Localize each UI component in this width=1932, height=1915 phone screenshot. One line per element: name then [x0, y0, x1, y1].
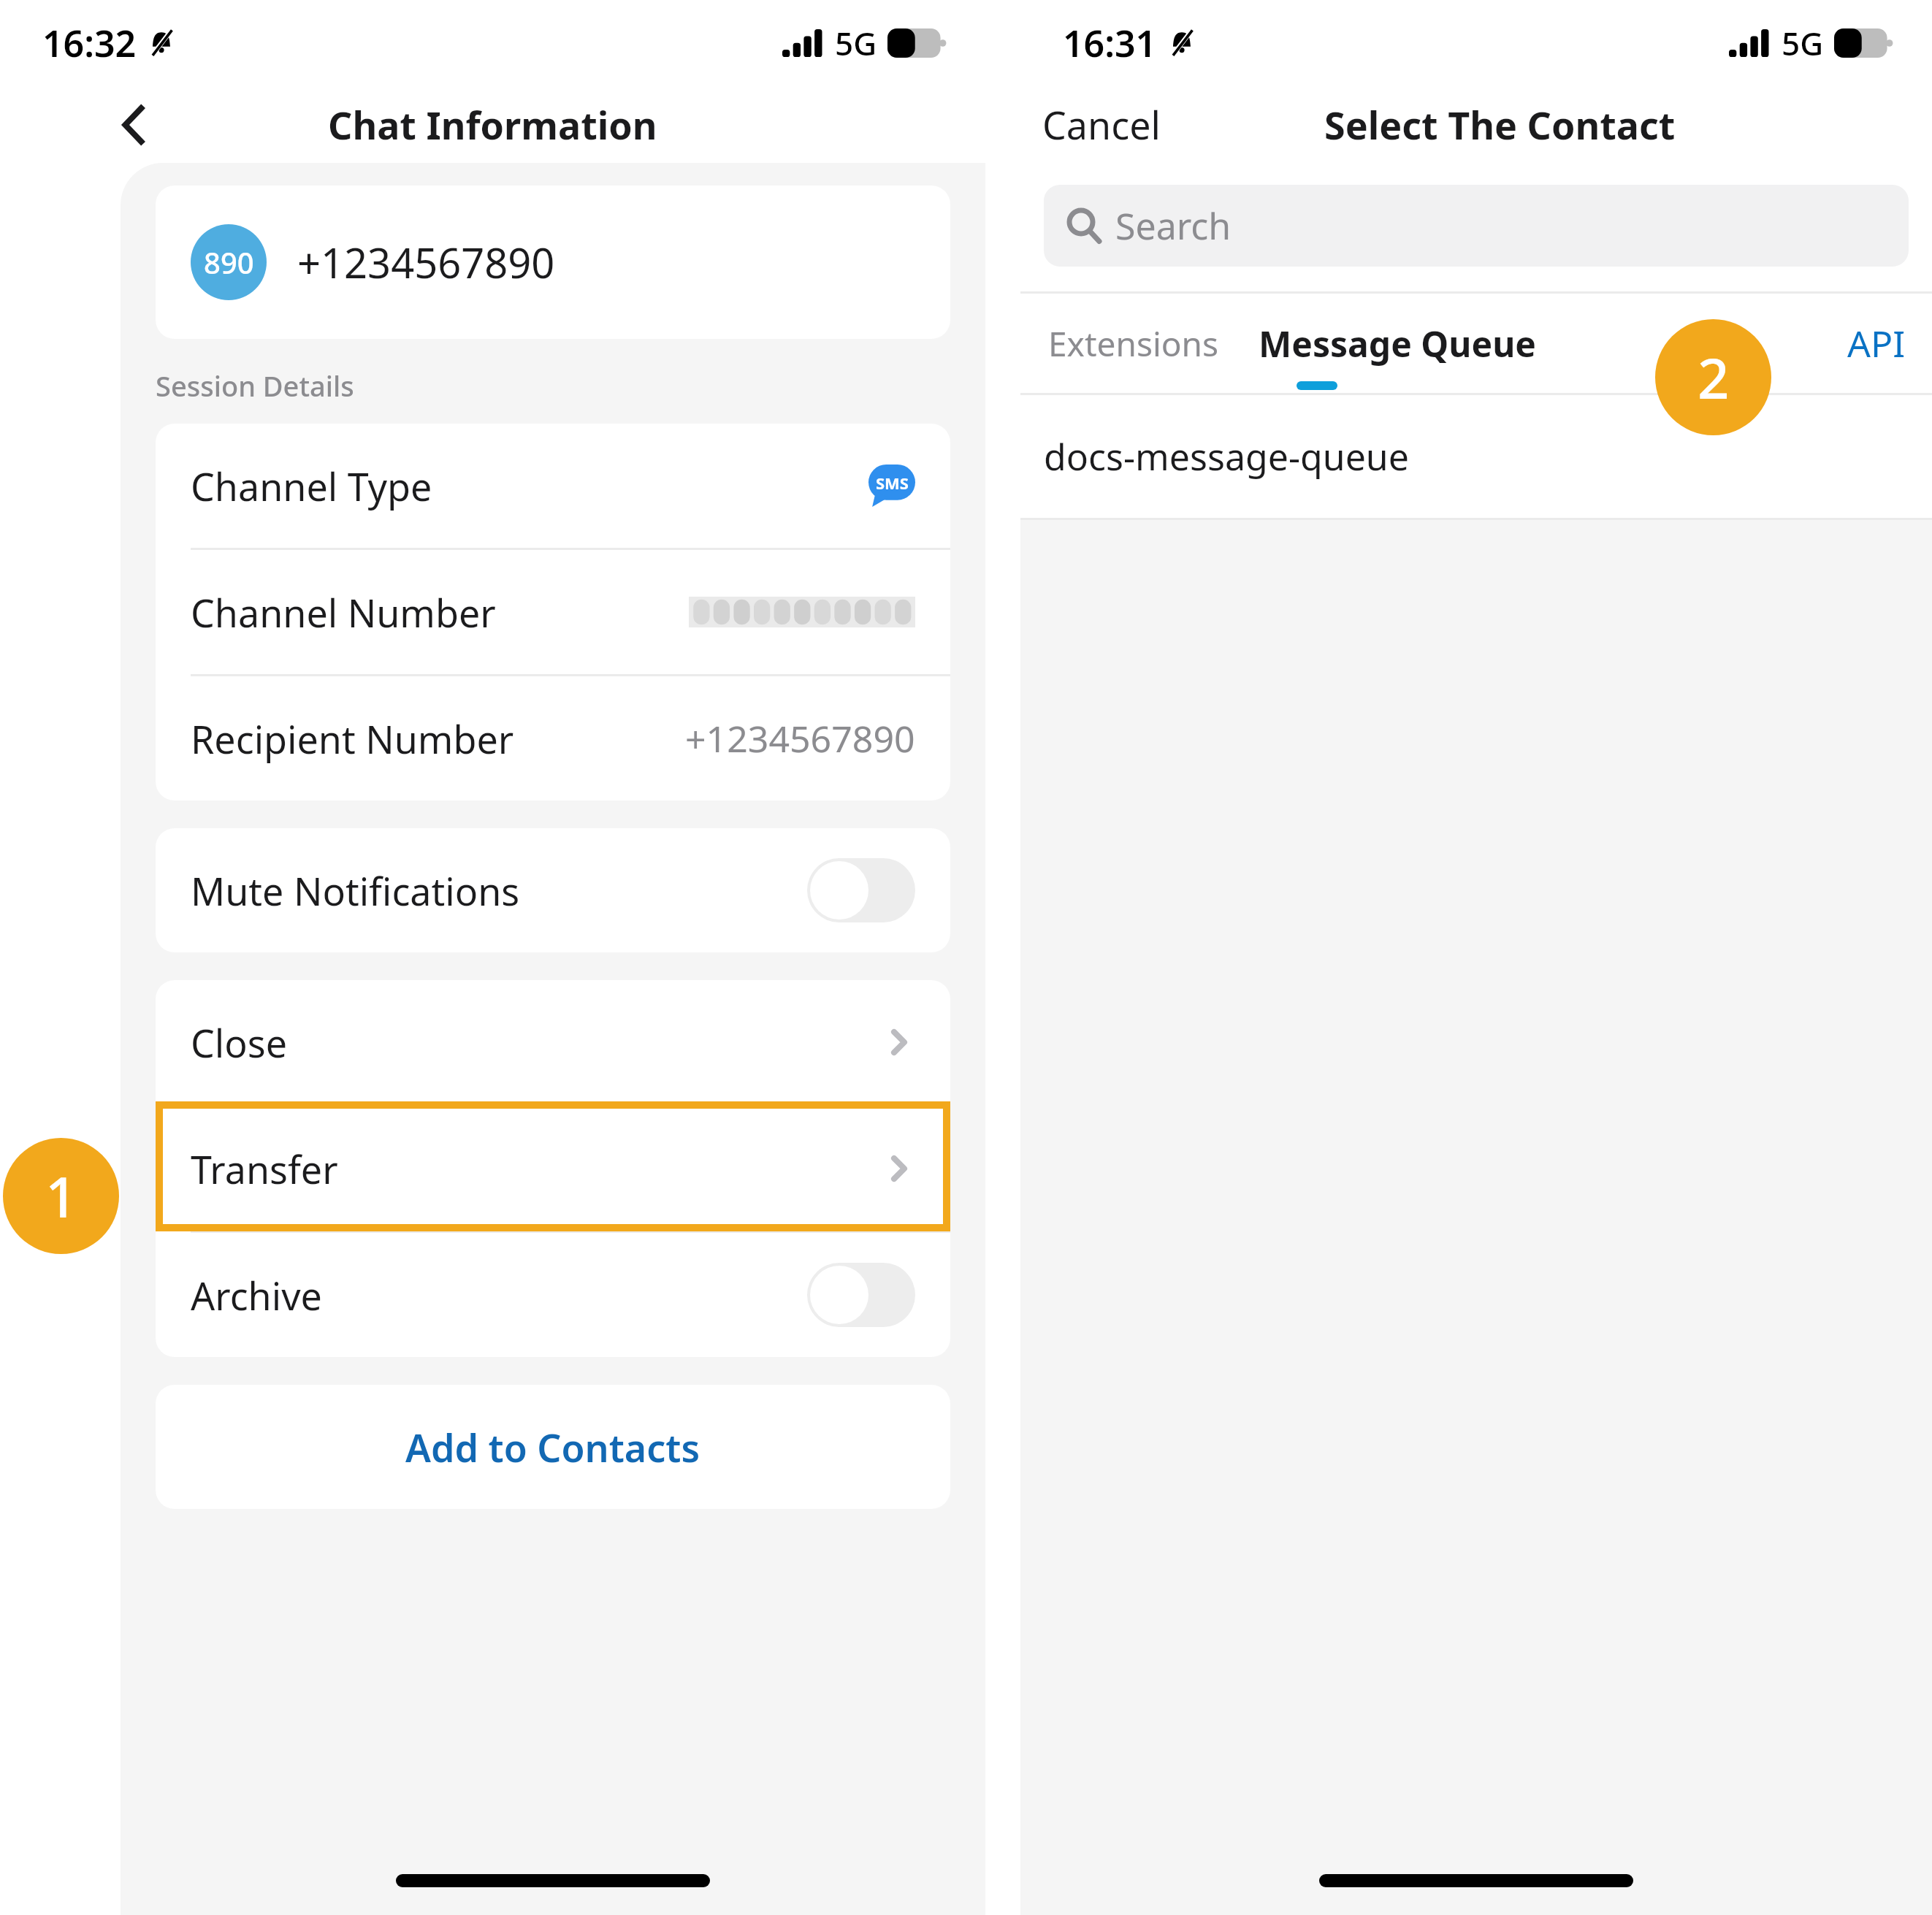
button[interactable]: Toggle — [807, 1263, 915, 1327]
staticText: +1234567890 — [685, 714, 915, 763]
staticText: SMS — [876, 472, 909, 494]
staticText: Extensions — [1048, 321, 1219, 367]
staticText: 5G — [835, 21, 877, 65]
button[interactable]: Search — [1044, 185, 1909, 267]
staticText: 16:31 — [1063, 18, 1157, 68]
staticText: Close — [191, 1017, 287, 1069]
staticText: 5G — [1782, 21, 1824, 65]
button[interactable]: docs-message-queue — [1020, 395, 1932, 518]
staticText: Select The Contact — [1324, 99, 1676, 150]
staticText: Archive — [191, 1269, 322, 1321]
button[interactable]: Recipient Number — [156, 676, 950, 800]
staticText: Cancel — [1042, 99, 1161, 150]
button[interactable]: Add to Contacts — [156, 1385, 950, 1509]
button[interactable]: Archive — [156, 1233, 950, 1357]
button[interactable]: Channel Type — [156, 424, 950, 548]
staticText: Add to Contacts — [405, 1421, 700, 1473]
staticText: Message Queue — [1259, 320, 1537, 367]
staticText: Chat Information — [328, 99, 657, 150]
button[interactable]: Transfer — [156, 1106, 950, 1231]
staticText: 2 — [1698, 340, 1730, 416]
button[interactable]: Message Queue — [1253, 310, 1543, 378]
staticText: Mute Notifications — [191, 865, 520, 917]
button[interactable]: Back — [110, 99, 161, 150]
staticText: Channel Number — [191, 586, 496, 638]
staticText: Recipient Number — [191, 713, 514, 765]
staticText: docs-message-queue — [1044, 432, 1409, 481]
staticText: 890 — [204, 242, 254, 282]
staticText: Channel Type — [191, 460, 432, 512]
staticText: Transfer — [191, 1143, 338, 1195]
button[interactable]: Mute Notifications — [156, 828, 950, 952]
button[interactable]: Toggle — [807, 858, 915, 922]
button[interactable]: Extensions — [1042, 310, 1225, 377]
button[interactable]: API — [1836, 310, 1917, 377]
staticText: +1234567890 — [297, 234, 555, 290]
staticText: Session Details — [156, 367, 354, 405]
button[interactable]: Close — [156, 980, 950, 1104]
staticText: 16:32 — [42, 18, 137, 68]
button[interactable]: Cancel — [1035, 91, 1168, 158]
button[interactable]: 890 — [156, 186, 950, 339]
staticText: Search — [1115, 201, 1232, 251]
staticText: 1 — [45, 1158, 77, 1234]
staticText: API — [1847, 318, 1906, 368]
button[interactable]: Channel Number — [156, 550, 950, 674]
